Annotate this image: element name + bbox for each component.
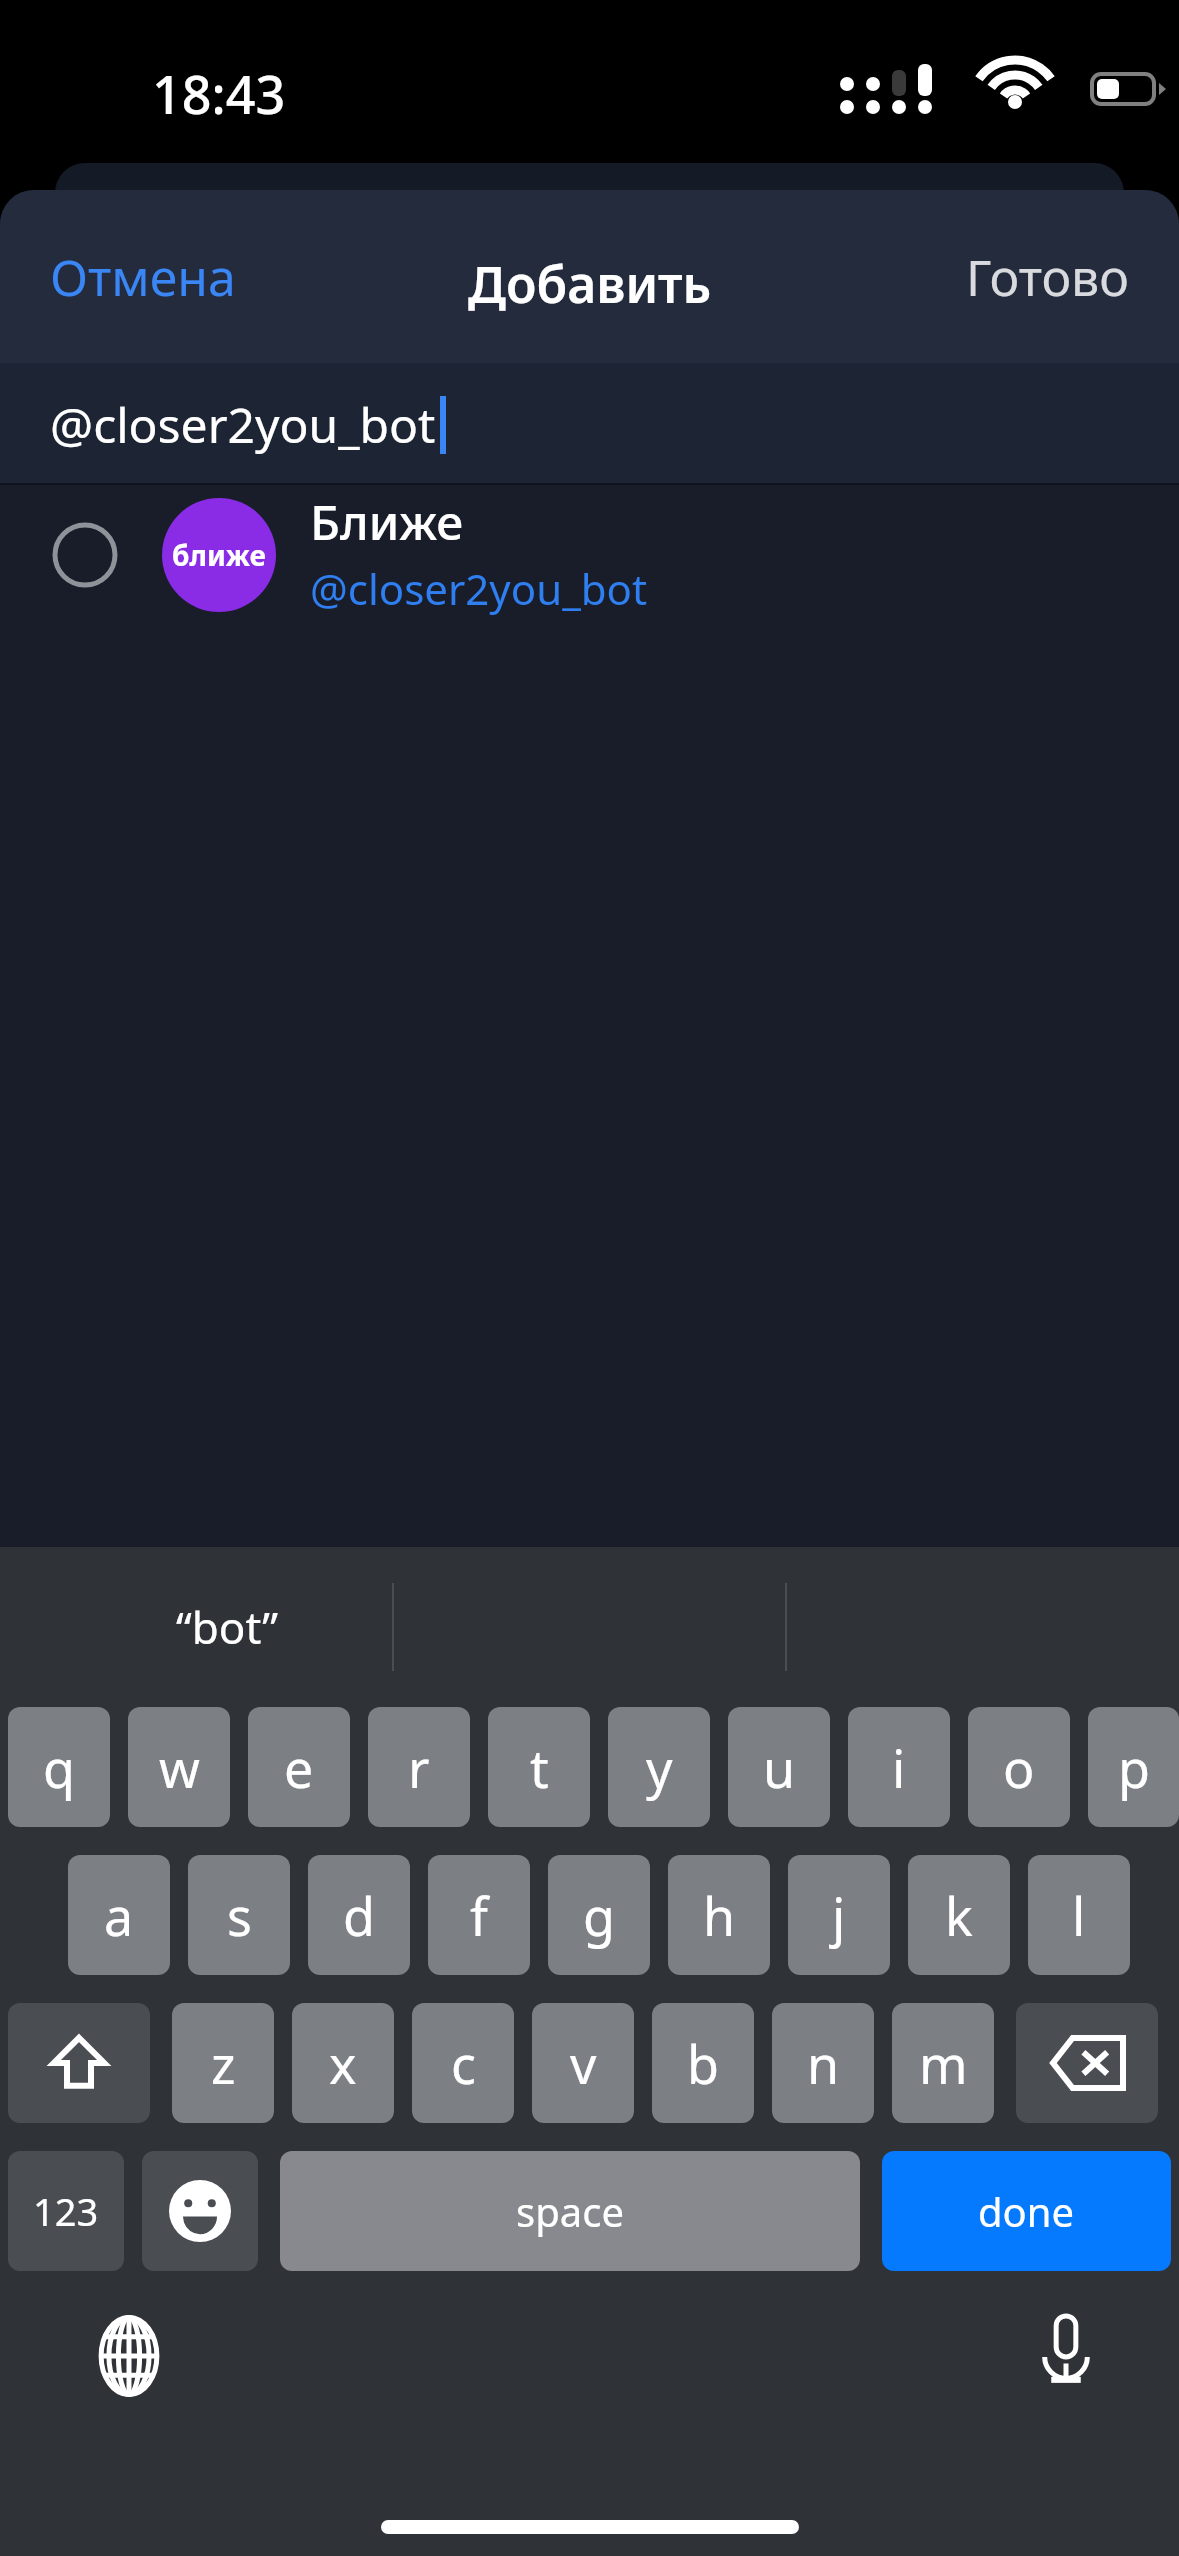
button[interactable]: Select xyxy=(0,485,1179,625)
staticText: t xyxy=(530,1732,549,1803)
button[interactable]: Backspace xyxy=(1016,2003,1158,2123)
staticText: d xyxy=(343,1880,375,1951)
button[interactable]: m xyxy=(892,2003,994,2123)
staticText: done xyxy=(978,2184,1075,2238)
button[interactable]: t xyxy=(488,1707,590,1827)
button[interactable]: c xyxy=(412,2003,514,2123)
button[interactable]: Готово xyxy=(936,227,1159,327)
button[interactable]: Dictation xyxy=(1025,2311,1107,2393)
staticText: space xyxy=(516,2184,624,2238)
button[interactable]: z xyxy=(172,2003,274,2123)
button[interactable]: Change keyboard xyxy=(88,2315,170,2397)
button[interactable]: done xyxy=(882,2151,1171,2271)
staticText: m xyxy=(919,2028,968,2099)
button[interactable]: space xyxy=(280,2151,860,2271)
staticText: b xyxy=(687,2028,719,2099)
button[interactable]: x xyxy=(292,2003,394,2123)
staticText: c xyxy=(451,2028,476,2099)
button[interactable]: r xyxy=(368,1707,470,1827)
staticText: z xyxy=(211,2028,236,2099)
button[interactable]: j xyxy=(788,1855,890,1975)
button[interactable]: i xyxy=(848,1707,950,1827)
button[interactable]: f xyxy=(428,1855,530,1975)
button[interactable]: Emoji xyxy=(142,2151,258,2271)
staticText: g xyxy=(583,1880,615,1951)
button[interactable]: b xyxy=(652,2003,754,2123)
button[interactable]: w xyxy=(128,1707,230,1827)
button[interactable]: d xyxy=(308,1855,410,1975)
staticText: @closer2you_bot xyxy=(310,560,648,617)
staticText: q xyxy=(43,1732,75,1803)
button[interactable]: “bot” xyxy=(62,1597,392,1657)
button[interactable]: e xyxy=(248,1707,350,1827)
staticText: y xyxy=(646,1732,673,1803)
staticText: Готово xyxy=(966,243,1129,311)
staticText: 18:43 xyxy=(152,58,286,129)
button[interactable]: q xyxy=(8,1707,110,1827)
staticText: 123 xyxy=(33,2185,99,2237)
staticText: v xyxy=(570,2028,597,2099)
staticText: k xyxy=(945,1880,973,1951)
staticText: Отмена xyxy=(50,243,236,311)
button[interactable]: l xyxy=(1028,1855,1130,1975)
staticText: h xyxy=(703,1880,736,1951)
button[interactable]: v xyxy=(532,2003,634,2123)
staticText: i xyxy=(892,1732,906,1803)
staticText: w xyxy=(159,1732,200,1803)
button[interactable]: n xyxy=(772,2003,874,2123)
button[interactable]: a xyxy=(68,1855,170,1975)
staticText: a xyxy=(104,1880,134,1951)
button[interactable]: g xyxy=(548,1855,650,1975)
staticText: n xyxy=(807,2028,840,2099)
staticText: l xyxy=(1072,1880,1086,1951)
other: Select xyxy=(52,522,118,588)
button[interactable]: k xyxy=(908,1855,1010,1975)
staticText: j xyxy=(832,1880,846,1951)
staticText: ближе xyxy=(172,536,266,574)
staticText: p xyxy=(1118,1732,1150,1803)
button[interactable]: p xyxy=(1088,1707,1179,1827)
button[interactable]: u xyxy=(728,1707,830,1827)
staticText: o xyxy=(1003,1732,1035,1803)
button[interactable]: h xyxy=(668,1855,770,1975)
staticText: u xyxy=(763,1732,796,1803)
button[interactable]: s xyxy=(188,1855,290,1975)
staticText: r xyxy=(408,1732,430,1803)
staticText: x xyxy=(329,2028,357,2099)
button[interactable]: Отмена xyxy=(20,227,266,327)
button[interactable]: o xyxy=(968,1707,1070,1827)
button[interactable]: 123 xyxy=(8,2151,124,2271)
staticText: s xyxy=(227,1880,252,1951)
staticText: e xyxy=(284,1732,314,1803)
staticText: f xyxy=(470,1880,488,1951)
staticText: Ближе xyxy=(310,489,464,554)
button[interactable]: @closer2you_bot xyxy=(0,363,1179,485)
button[interactable]: y xyxy=(608,1707,710,1827)
staticText: @closer2you_bot xyxy=(50,392,436,457)
button[interactable]: Shift xyxy=(8,2003,150,2123)
staticText: Добавить xyxy=(468,250,712,318)
